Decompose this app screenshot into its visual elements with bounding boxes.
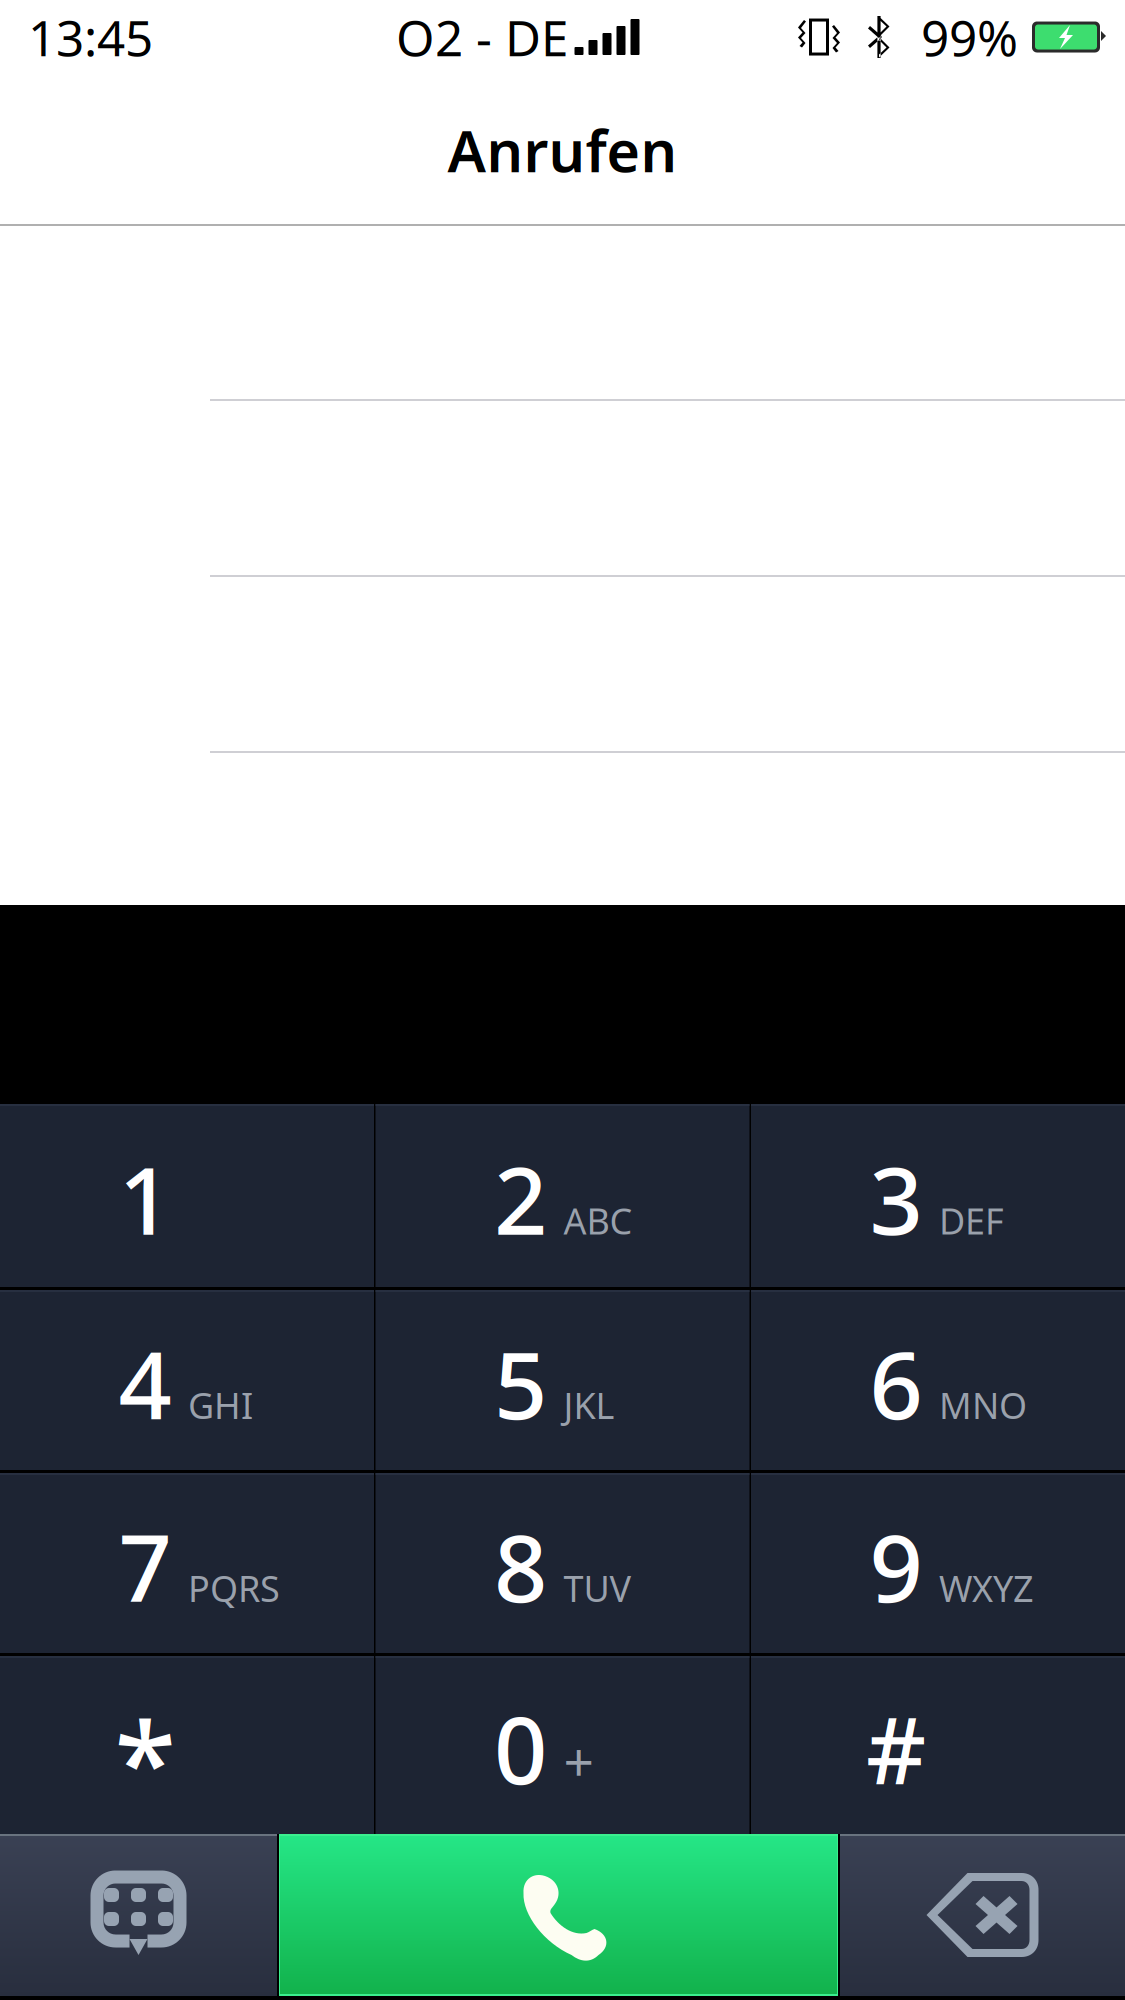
staticText: 1	[118, 1136, 171, 1260]
staticText: JKL	[563, 1381, 614, 1429]
staticText: 9	[869, 1504, 922, 1628]
staticText: 7	[118, 1504, 171, 1628]
button[interactable]: Hide keypad	[0, 1834, 277, 1996]
staticText: PQRS	[188, 1564, 280, 1612]
button[interactable]: 7	[0, 1473, 374, 1653]
staticText: +	[563, 1726, 594, 1796]
staticText: 2	[494, 1136, 547, 1260]
staticText: 0	[494, 1686, 547, 1810]
staticText: 13:45	[28, 4, 153, 70]
button[interactable]: Delete	[840, 1834, 1125, 1996]
button[interactable]: 1	[0, 1104, 374, 1287]
staticText: 6	[869, 1321, 922, 1445]
button[interactable]: Call	[279, 1834, 838, 1996]
staticText: DEF	[939, 1197, 1004, 1244]
staticText: 4	[118, 1321, 171, 1445]
staticText: #	[866, 1686, 926, 1810]
button[interactable]: 9	[751, 1473, 1125, 1653]
button[interactable]: 0	[375, 1656, 749, 1834]
button[interactable]: *	[0, 1656, 374, 1834]
button[interactable]: 8	[375, 1473, 749, 1653]
button[interactable]: 2	[375, 1104, 749, 1287]
button[interactable]: 6	[751, 1290, 1125, 1470]
button[interactable]: 4	[0, 1290, 374, 1470]
staticText: TUV	[563, 1564, 631, 1612]
staticText: O2 - DE	[396, 4, 568, 70]
staticText: 99%	[921, 4, 1018, 70]
staticText: 3	[869, 1136, 922, 1260]
button[interactable]: 5	[375, 1290, 749, 1470]
staticText: GHI	[188, 1381, 253, 1429]
staticText: 5	[494, 1321, 547, 1445]
staticText: 8	[494, 1504, 547, 1628]
staticText: MNO	[939, 1381, 1027, 1429]
staticText: Anrufen	[447, 112, 677, 188]
staticText: ABC	[563, 1197, 632, 1244]
button[interactable]: 3	[751, 1104, 1125, 1287]
button[interactable]: #	[751, 1656, 1125, 1834]
staticText: WXYZ	[939, 1564, 1034, 1612]
staticText: *	[114, 1687, 175, 1835]
